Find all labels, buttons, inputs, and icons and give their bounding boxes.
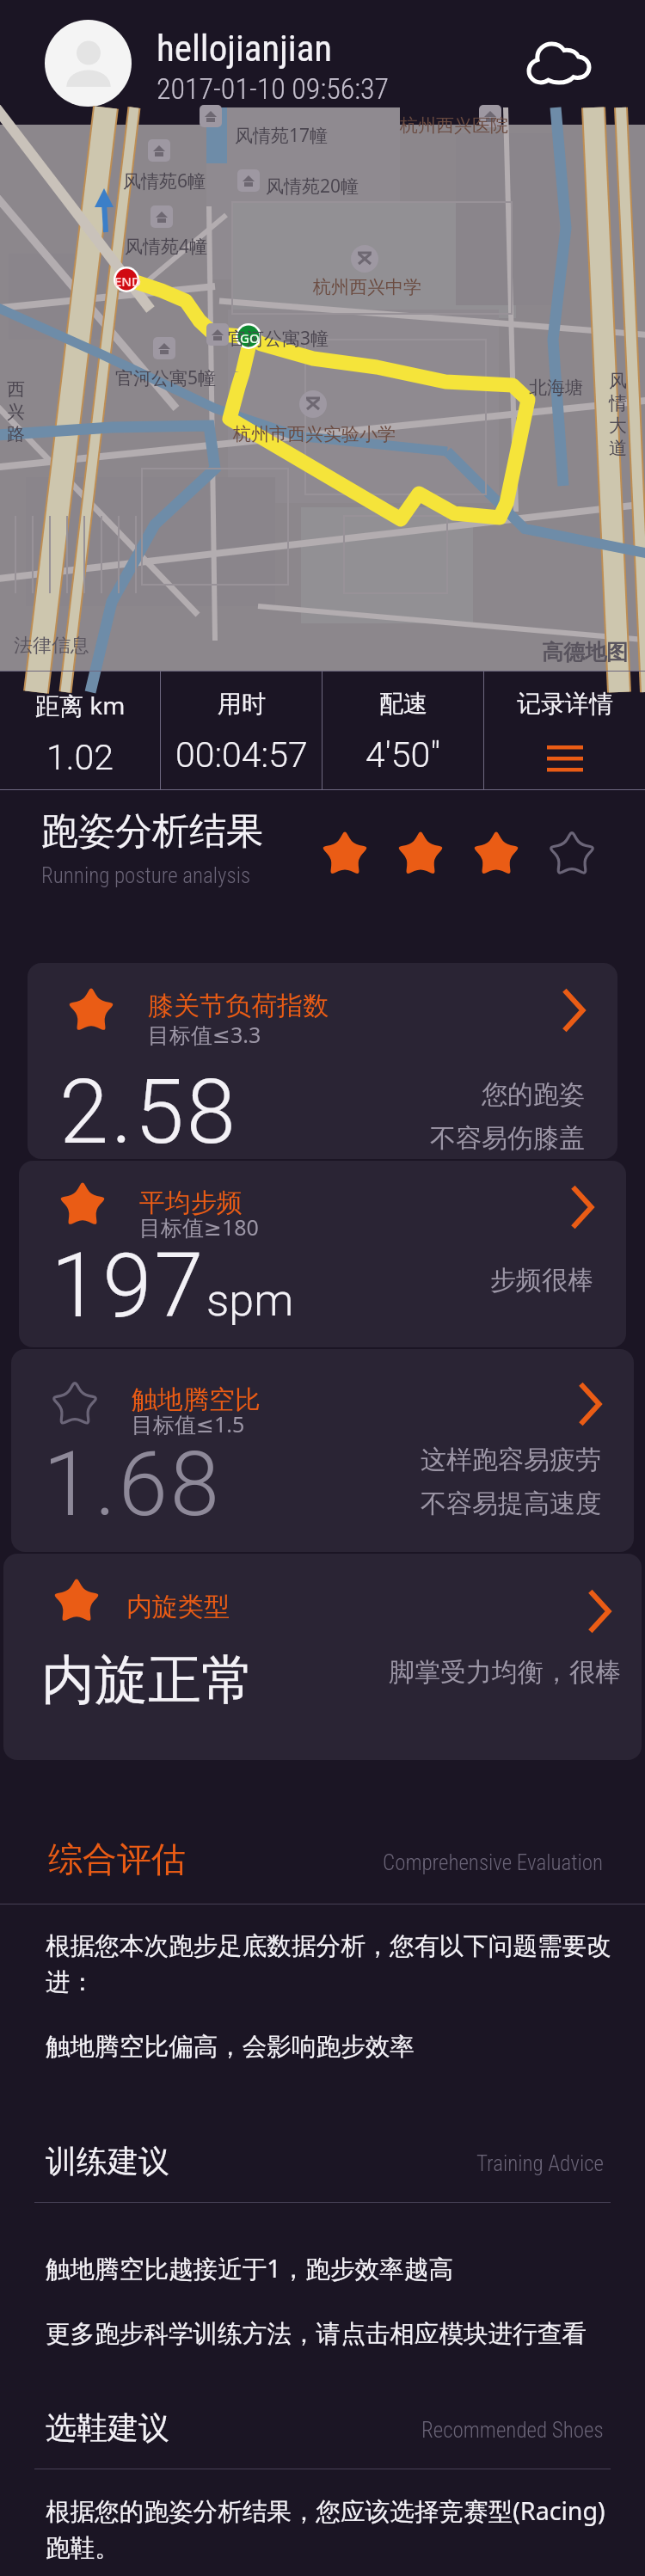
staticText: 不容易提高速度 [421, 1487, 601, 1520]
staticText: 您的跑姿 [482, 1078, 585, 1111]
staticText: 配速 [379, 689, 427, 719]
staticText: 路 [7, 423, 25, 445]
staticText: 1.68 [43, 1432, 222, 1536]
button[interactable]: Sync to cloud [520, 24, 598, 101]
staticText: 风 [609, 370, 627, 392]
staticText: 脚掌受力均衡，很棒 [389, 1656, 621, 1689]
staticText: 触地腾空比越接近于1，跑步效率越高 [46, 2251, 453, 2285]
staticText: Comprehensive Evaluation [383, 1850, 604, 1875]
other: Open details [580, 1386, 601, 1422]
staticText: 2.58 [59, 1060, 238, 1159]
staticText: 杭州市西兴实验小学 [233, 423, 396, 445]
button[interactable]: 内旋类型 [3, 1554, 642, 1760]
staticText: 记录详情 [517, 689, 613, 719]
button[interactable]: 记录详情 [484, 672, 645, 789]
staticText: 内旋正常 [41, 1647, 255, 1714]
staticText: 风情苑4幢 [125, 234, 208, 259]
staticText: 目标值≥180 [139, 1212, 259, 1242]
other: Open details [573, 1189, 593, 1225]
button[interactable]: 用时 [161, 672, 322, 789]
staticText: 风情苑20幢 [266, 174, 359, 199]
staticText: 197 [51, 1234, 206, 1338]
staticText: 距离 km [35, 689, 126, 721]
staticText: 2017-01-10 09:56:37 [157, 71, 390, 106]
other: Open details [564, 992, 585, 1028]
staticText: 西 [7, 378, 25, 401]
staticText: 这样跑容易疲劳 [421, 1444, 601, 1476]
staticText: 4'50" [365, 734, 440, 776]
button[interactable]: 膝关节负荷指数 [28, 963, 617, 1159]
button[interactable]: 距离 km [0, 672, 160, 789]
staticText: 法律信息 [14, 634, 89, 658]
staticText: 情 [609, 392, 627, 414]
button[interactable]: 平均步频 [19, 1161, 626, 1347]
staticText: 综合评估 [48, 1837, 383, 1880]
staticText: 内旋类型 [126, 1591, 230, 1623]
staticText: 道 [609, 437, 627, 459]
staticText: hellojianjian [157, 27, 333, 70]
staticText: 风情苑6幢 [123, 169, 206, 193]
staticText: Running posture analysis [41, 863, 251, 888]
staticText: 杭州西兴医院 [400, 114, 508, 137]
staticText: 跑姿分析结果 [41, 808, 263, 855]
button[interactable]: Profile [45, 20, 132, 107]
staticText: END [114, 273, 141, 290]
staticText: 触地腾空比 [132, 1383, 261, 1416]
staticText: 杭州西兴中学 [313, 276, 421, 298]
staticText: 1.02 [46, 737, 114, 778]
staticText: 膝关节负荷指数 [148, 990, 329, 1022]
staticText: Training Advice [476, 2151, 604, 2176]
staticText: 平均步频 [139, 1187, 243, 1219]
button[interactable]: 触地腾空比 [11, 1349, 634, 1552]
staticText: 官河公寓3幢 [228, 326, 329, 351]
other: Open details [590, 1593, 611, 1629]
staticText: 兴 [7, 401, 25, 423]
staticText: 北海塘 [529, 377, 583, 399]
button[interactable]: 配速 [322, 672, 483, 789]
staticText: 目标值≤3.3 [148, 1020, 261, 1049]
staticText: 步频很棒 [490, 1264, 593, 1297]
staticText: 训练建议 [46, 2142, 476, 2180]
staticText: 根据您本次跑步足底数据分析，您有以下问题需要改进： [46, 1930, 615, 1998]
staticText: 根据您的跑姿分析结果，您应该选择竞赛型(Racing)跑鞋。 [46, 2493, 615, 2564]
staticText: 高德地图 [542, 639, 628, 665]
staticText: 00:04:57 [175, 734, 308, 776]
staticText: spm [206, 1274, 294, 1327]
staticText: 不容易伤膝盖 [430, 1122, 585, 1155]
staticText: GO [240, 329, 260, 347]
staticText: 目标值≤1.5 [132, 1409, 245, 1438]
staticText: 触地腾空比偏高，会影响跑步效率 [46, 2031, 415, 2062]
staticText: 用时 [218, 689, 266, 719]
staticText: Recommended Shoes [421, 2418, 604, 2443]
staticText: 风情苑17幢 [235, 123, 329, 148]
staticText: 更多跑步科学训练方法，请点击相应模块进行查看 [46, 2318, 587, 2349]
staticText: 官河公寓5幢 [115, 365, 217, 390]
staticText: 选鞋建议 [46, 2408, 421, 2447]
staticText: 大 [609, 414, 627, 437]
